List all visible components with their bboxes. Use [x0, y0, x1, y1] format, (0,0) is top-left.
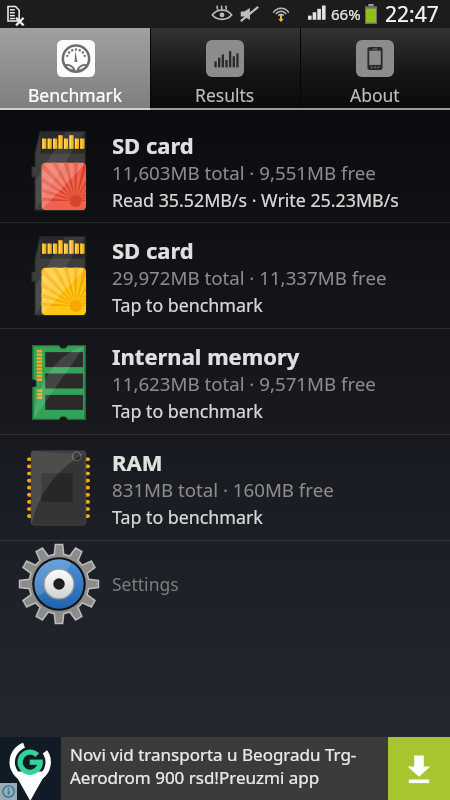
button[interactable]: Settings — [0, 541, 450, 626]
staticText: SD card — [112, 235, 194, 265]
button[interactable]: Download — [388, 737, 450, 800]
button[interactable]: Results — [150, 28, 300, 110]
staticText: SD card — [112, 130, 194, 160]
button[interactable]: SD card — [0, 110, 450, 222]
staticText: 22:47 — [385, 0, 439, 28]
staticText: Benchmark — [28, 83, 123, 107]
staticText: 11,623MB total · 9,571MB free — [112, 371, 376, 396]
staticText: Tap to benchmark — [112, 399, 263, 423]
staticText: Tap to benchmark — [112, 293, 263, 317]
staticText: RAM — [112, 447, 163, 477]
button[interactable]: About — [300, 28, 450, 110]
staticText: 29,972MB total · 11,337MB free — [112, 265, 387, 290]
staticText: Results — [195, 83, 255, 107]
staticText: Settings — [112, 572, 179, 596]
staticText: Read 35.52MB/s · Write 25.23MB/s — [112, 188, 399, 212]
staticText: About — [350, 83, 400, 107]
button[interactable]: SD card — [0, 223, 450, 328]
staticText: Tap to benchmark — [112, 505, 263, 529]
staticText: Novi vid transporta u Beogradu Trg- — [70, 743, 357, 766]
button[interactable]: RAM — [0, 435, 450, 540]
staticText: 11,603MB total · 9,551MB free — [112, 160, 376, 185]
staticText: 66% — [331, 4, 361, 24]
button[interactable]: Benchmark — [0, 28, 150, 110]
button[interactable]: Novi vid transporta u Beogradu Trg- — [0, 737, 450, 800]
staticText: Aerodrom 900 rsd!Preuzmi app — [70, 766, 320, 789]
staticText: Internal memory — [112, 341, 300, 371]
staticText: 831MB total · 160MB free — [112, 477, 334, 502]
button[interactable]: Internal memory — [0, 329, 450, 434]
